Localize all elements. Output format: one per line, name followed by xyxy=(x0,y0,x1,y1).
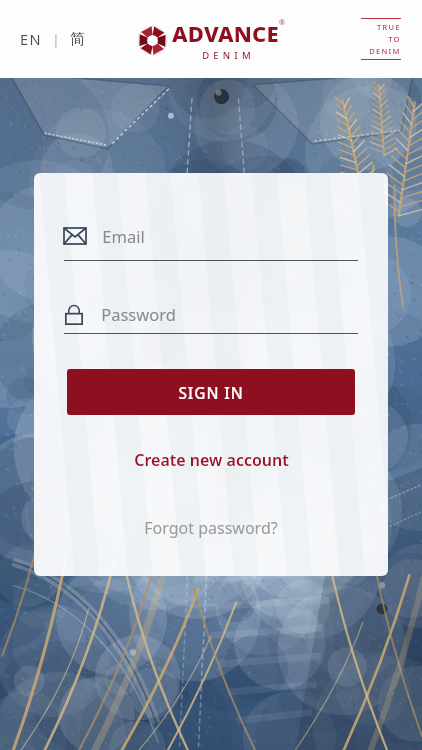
staticText: Email xyxy=(102,225,145,247)
button[interactable]: Email xyxy=(34,225,388,261)
staticText: DENIM xyxy=(369,46,401,56)
button[interactable]: EN xyxy=(18,23,87,55)
staticText: Create new account xyxy=(134,449,289,471)
button[interactable]: SIGN IN xyxy=(67,369,355,415)
staticText: 简 xyxy=(70,30,85,49)
staticText: ® xyxy=(279,18,285,28)
button[interactable]: Forgot password? xyxy=(34,511,388,545)
staticText: TO xyxy=(388,34,401,44)
staticText: SIGN IN xyxy=(178,382,244,403)
staticText: TRUE xyxy=(377,22,401,32)
staticText: ADVANCE xyxy=(172,18,279,48)
button[interactable]: Password xyxy=(34,303,388,334)
staticText: EN xyxy=(20,29,42,49)
staticText: DENIM xyxy=(202,49,255,62)
staticText: | xyxy=(52,29,60,49)
button[interactable]: Create new account xyxy=(34,443,388,477)
staticText: Password xyxy=(101,303,176,325)
staticText: Forgot password? xyxy=(144,517,278,539)
